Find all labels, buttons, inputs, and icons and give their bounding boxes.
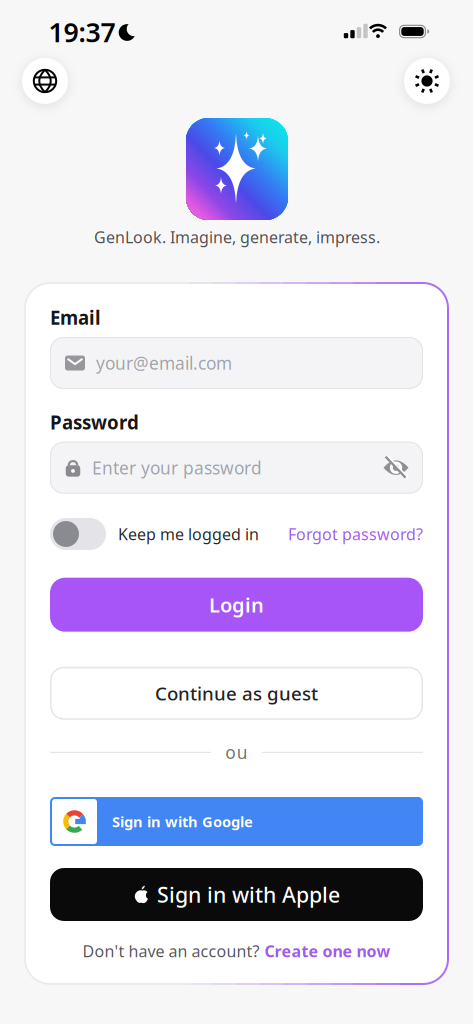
staticText: Don't have an account? [82,940,259,962]
button[interactable]: Create one now [264,940,390,962]
button[interactable]: Sign in with Apple [50,868,423,921]
button[interactable]: Toggle appearance [404,58,450,104]
staticText: Password [50,410,139,435]
staticText: GenLook. Imagine, generate, impress. [94,226,380,248]
staticText: Sign in with Google [112,812,253,831]
button[interactable]: Sign in with Google [50,797,423,846]
button[interactable]: Continue as guest [50,667,423,720]
button[interactable]: Forgot password? [288,523,423,545]
button[interactable]: Show password [383,457,409,479]
staticText: Create one now [264,940,390,962]
button[interactable]: Login [50,578,423,632]
staticText: your@email.com [96,351,232,374]
staticText: Enter your password [92,456,262,479]
staticText: Sign in with Apple [157,880,340,909]
staticText: Forgot password? [288,523,423,545]
staticText: Keep me logged in [118,523,259,545]
staticText: ou [225,741,248,764]
staticText: Email [50,305,101,330]
staticText: Login [209,591,264,618]
staticText: Continue as guest [155,681,318,706]
staticText: 19:37 [48,14,115,50]
button[interactable]: Language [22,58,68,104]
button[interactable]: Keep me logged in [50,518,106,550]
